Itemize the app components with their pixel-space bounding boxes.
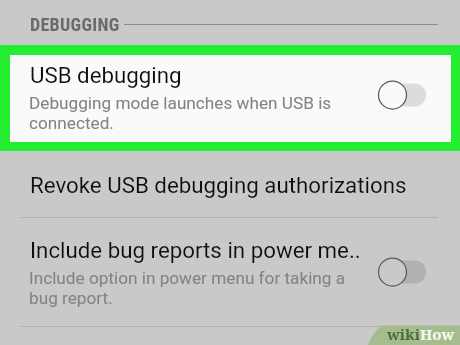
staticText: wiki — [387, 324, 420, 344]
button[interactable]: USB debugging — [10, 55, 451, 142]
staticText: Revoke USB debugging authorizations — [30, 172, 407, 198]
button[interactable]: Include bug reports in power me.. — [0, 218, 460, 325]
staticText: USB debugging — [30, 62, 182, 88]
staticText: How — [420, 324, 455, 344]
button[interactable]: USB debugging, off — [378, 80, 426, 110]
button[interactable]: Include bug reports in power menu, off — [378, 257, 426, 287]
staticText: Debugging mode launches when USB is conn… — [29, 93, 332, 133]
staticText: Include bug reports in power me.. — [30, 237, 361, 263]
button[interactable]: Revoke USB debugging authorizations — [0, 151, 460, 217]
staticText: Include option in power menu for taking … — [29, 268, 346, 308]
staticText: DEBUGGING — [30, 14, 120, 35]
